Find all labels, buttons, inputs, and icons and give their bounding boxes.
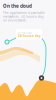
staticText: 24 hours a day: [18, 34, 40, 38]
staticText: On the cloud: [18, 31, 31, 34]
staticText: The application is available everywhere,…: [3, 11, 45, 22]
staticText: On the cloud: [3, 3, 32, 9]
button[interactable]: On the cloud: [16, 29, 42, 40]
